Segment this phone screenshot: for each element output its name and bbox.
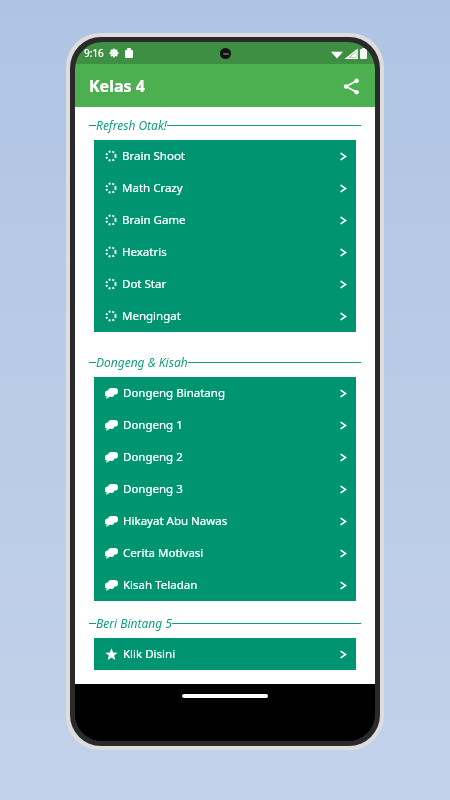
staticText: Brain Shoot <box>122 148 185 164</box>
button[interactable]: Mengingat <box>94 300 356 332</box>
staticText: Klik Disini <box>123 646 176 662</box>
button[interactable]: Hikayat Abu Nawas <box>94 505 356 537</box>
staticText: Dot Star <box>122 276 167 292</box>
button[interactable]: Math Crazy <box>94 172 356 204</box>
button[interactable]: Dongeng 3 <box>94 473 356 505</box>
staticText: Math Crazy <box>122 180 183 196</box>
button[interactable]: Cerita Motivasi <box>94 537 356 569</box>
staticText: Dongeng 2 <box>123 449 183 465</box>
button[interactable]: Dot Star <box>94 268 356 300</box>
button[interactable]: Hexatris <box>94 236 356 268</box>
staticText: Mengingat <box>122 308 181 324</box>
staticText: Refresh Otak! <box>96 117 167 133</box>
button[interactable]: Brain Game <box>94 204 356 236</box>
staticText: Dongeng 3 <box>123 481 183 497</box>
button[interactable]: Dongeng 2 <box>94 441 356 473</box>
button[interactable]: Brain Shoot <box>94 140 356 172</box>
button[interactable]: Dongeng 1 <box>94 409 356 441</box>
button[interactable]: Klik Disini <box>94 638 356 670</box>
staticText: Dongeng & Kisah <box>96 354 188 370</box>
staticText: Kisah Teladan <box>123 577 198 593</box>
button[interactable]: Kelas 4 <box>89 75 145 97</box>
button[interactable]: Kisah Teladan <box>94 569 356 601</box>
staticText: 9:16 <box>84 46 104 60</box>
staticText: Kelas 4 <box>89 75 145 97</box>
staticText: Hexatris <box>122 244 167 260</box>
staticText: Dongeng Binatang <box>123 385 225 401</box>
staticText: Cerita Motivasi <box>123 545 204 561</box>
staticText: Beri Bintang 5 <box>96 615 172 631</box>
button[interactable]: Share <box>333 68 369 104</box>
staticText: Dongeng 1 <box>123 417 183 433</box>
staticText: Brain Game <box>122 212 186 228</box>
button[interactable]: Dongeng Binatang <box>94 377 356 409</box>
staticText: Hikayat Abu Nawas <box>123 513 228 529</box>
